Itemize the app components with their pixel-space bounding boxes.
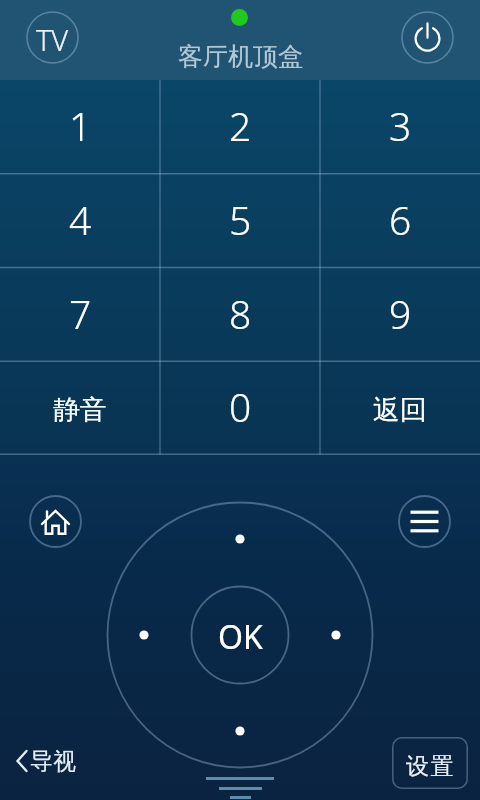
button[interactable]: 返回 [320,362,480,455]
button[interactable]: 3 [320,80,480,174]
staticText: 设置 [406,752,455,781]
staticText: 8 [229,287,252,340]
staticText: 4 [69,193,92,246]
button[interactable]: Menu [398,495,451,548]
button[interactable]: 静音 [0,362,160,455]
button[interactable]: 7 [0,268,160,362]
staticText: 导视 [30,747,76,776]
button[interactable]: 6 [320,174,480,268]
button[interactable]: 5 [160,174,320,268]
button[interactable]: 2 [160,80,320,174]
staticText: TV [36,20,69,59]
button[interactable]: 8 [160,268,320,362]
staticText: 3 [389,99,412,152]
button[interactable]: 导视 [14,746,76,776]
staticText: 6 [389,193,412,246]
staticText: 返回 [373,393,427,427]
button[interactable]: 设置 [392,737,468,789]
staticText: 客厅机顶盒 [178,41,303,72]
staticText: 静音 [53,393,107,427]
button[interactable]: 1 [0,80,160,174]
staticText: 1 [69,99,92,152]
button[interactable]: TV [26,11,79,64]
staticText: OK [218,615,263,659]
button[interactable]: Power [401,11,454,64]
staticText: 9 [389,287,412,340]
staticText: 2 [229,99,252,152]
button[interactable]: 4 [0,174,160,268]
staticText: 0 [229,380,252,433]
staticText: 5 [229,193,252,246]
button[interactable]: Home [29,495,82,548]
button[interactable]: 9 [320,268,480,362]
button[interactable]: 0 [160,362,320,455]
staticText: 7 [69,287,92,340]
button[interactable]: OK [191,586,288,683]
